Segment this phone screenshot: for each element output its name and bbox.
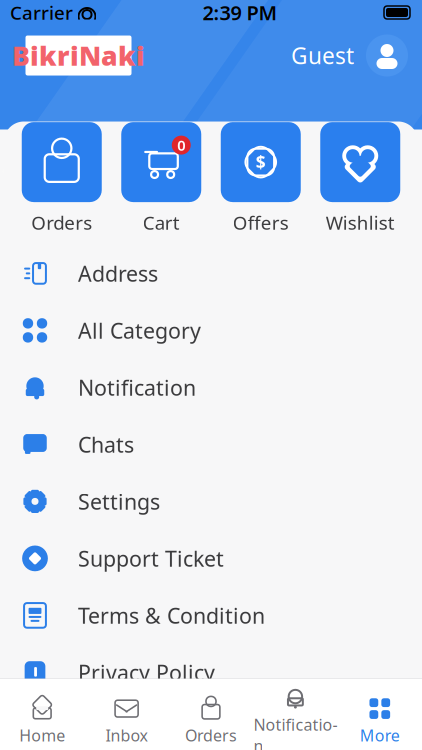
button[interactable]: Chats <box>4 416 418 473</box>
button[interactable]: Orders <box>169 690 253 750</box>
staticText: Guest <box>291 40 354 70</box>
button[interactable]: Guest <box>291 34 408 76</box>
staticText: All Category <box>78 316 201 344</box>
button[interactable]: All Category <box>4 302 418 359</box>
button[interactable]: Support Ticket <box>4 530 418 587</box>
button[interactable]: Notification <box>4 359 418 416</box>
staticText: Support Ticket <box>78 544 224 572</box>
button[interactable]: Address <box>4 245 418 302</box>
staticText: $ <box>256 151 266 174</box>
staticText: Carrier <box>10 0 73 25</box>
button[interactable]: Home <box>0 690 84 750</box>
button[interactable]: Privacy Policy <box>4 644 418 701</box>
staticText: Cart <box>143 210 180 235</box>
staticText: Privacy Policy <box>78 658 215 686</box>
staticText: More <box>360 725 400 746</box>
staticText: 2:39 PM <box>202 0 277 26</box>
button[interactable]: Notification <box>253 679 338 750</box>
staticText: Terms & Condition <box>78 601 265 629</box>
staticText: Orders <box>31 210 92 235</box>
staticText: Settings <box>78 487 160 515</box>
staticText: Home <box>19 725 65 746</box>
staticText: Orders <box>185 725 237 746</box>
staticText: Inbox <box>106 725 148 746</box>
button[interactable]: Settings <box>4 473 418 530</box>
button[interactable]: More <box>338 690 422 750</box>
staticText: Offers <box>233 210 289 235</box>
button[interactable]: Terms & Condition <box>4 587 418 644</box>
staticText: Address <box>78 259 158 287</box>
button[interactable]: Wishlist <box>320 122 400 235</box>
button[interactable]: 0 <box>121 122 201 235</box>
button[interactable]: Orders <box>22 122 102 235</box>
staticText: Chats <box>78 430 134 458</box>
staticText: 0 <box>177 135 185 155</box>
staticText: Notification <box>78 373 196 401</box>
staticText: Wishlist <box>326 210 395 235</box>
button[interactable]: $ <box>221 122 301 235</box>
button[interactable]: Inbox <box>84 690 169 750</box>
staticText: BikriNaki <box>12 38 145 73</box>
staticText: Notification <box>253 714 337 750</box>
